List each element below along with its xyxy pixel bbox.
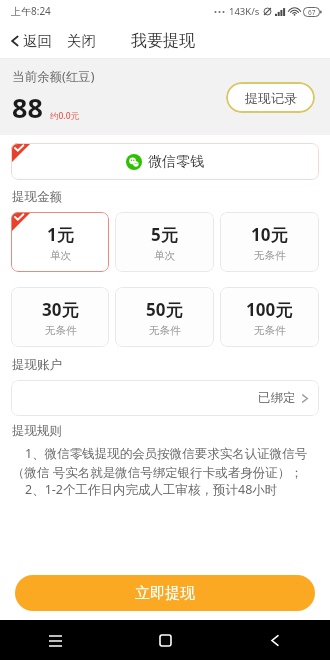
- button[interactable]: Recent apps: [0, 620, 110, 660]
- staticText: 无条件: [45, 324, 77, 337]
- button[interactable]: 返回: [7, 28, 54, 54]
- button[interactable]: 50元: [115, 287, 214, 347]
- staticText: 单次: [50, 249, 71, 262]
- staticText: 已绑定: [258, 390, 296, 406]
- button[interactable]: 提现记录: [226, 82, 315, 113]
- staticText: 1、微信零钱提现的会员按微信要求实名认证微信号（微信 号实名就是微信号绑定银行卡…: [12, 445, 318, 481]
- button[interactable]: 微信零钱: [11, 143, 319, 180]
- staticText: 无条件: [149, 324, 181, 337]
- staticText: 5元: [151, 223, 178, 246]
- button[interactable]: 10元: [220, 212, 319, 272]
- staticText: 无条件: [254, 324, 286, 337]
- staticText: 微信零钱: [148, 153, 204, 171]
- staticText: 2、1-2个工作日内完成人工审核，预计48小时: [12, 481, 278, 498]
- button[interactable]: 已绑定: [11, 380, 319, 416]
- staticText: 88: [12, 89, 43, 126]
- staticText: 单次: [154, 249, 175, 262]
- button[interactable]: 5元: [115, 212, 214, 272]
- staticText: 50元: [146, 298, 183, 321]
- button[interactable]: Back: [220, 620, 330, 660]
- staticText: 30元: [42, 298, 79, 321]
- staticText: 返回: [23, 32, 52, 50]
- staticText: 67: [308, 8, 316, 17]
- staticText: 提现记录: [245, 90, 297, 106]
- button[interactable]: 1元: [11, 212, 109, 272]
- staticText: 提现金额: [12, 189, 62, 205]
- staticText: 10元: [251, 223, 288, 246]
- staticText: 1元: [47, 223, 74, 246]
- staticText: 我要提现: [131, 31, 195, 51]
- staticText: 143K/s: [229, 5, 260, 18]
- button[interactable]: 100元: [220, 287, 319, 347]
- button[interactable]: Home: [110, 620, 220, 660]
- staticText: 立即提现: [135, 584, 195, 603]
- staticText: 无条件: [254, 249, 286, 262]
- staticText: 提现规则: [12, 423, 62, 439]
- staticText: 当前余额(红豆): [12, 68, 95, 85]
- button[interactable]: 关闭: [64, 29, 99, 53]
- staticText: 约0.0元: [50, 110, 80, 122]
- staticText: 提现账户: [12, 357, 62, 373]
- button[interactable]: 30元: [11, 287, 109, 347]
- staticText: 100元: [246, 298, 293, 321]
- button[interactable]: 立即提现: [15, 575, 315, 611]
- staticText: 上午8:24: [11, 4, 51, 18]
